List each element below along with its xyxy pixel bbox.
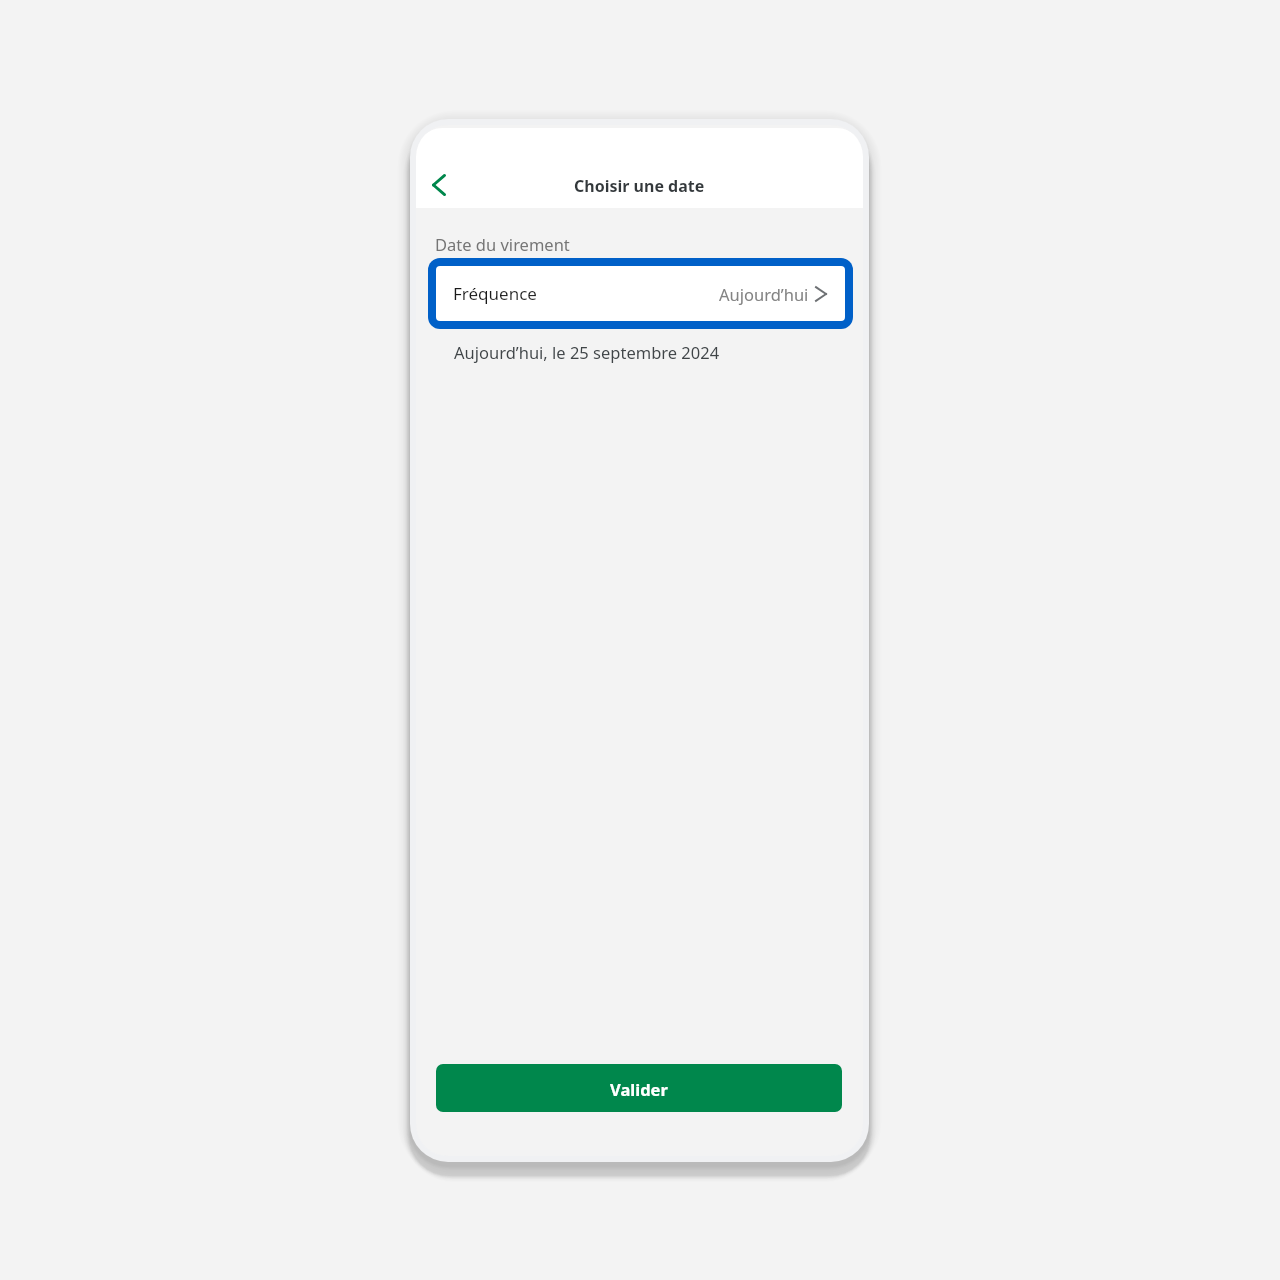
button[interactable]: Back (416, 161, 463, 208)
button[interactable]: Valider (436, 1064, 842, 1112)
staticText: Aujourd’hui (719, 283, 809, 305)
staticText: Choisir une date (574, 175, 705, 197)
staticText: Valider (610, 1078, 668, 1100)
staticText: Date du virement (435, 233, 570, 255)
staticText: Aujourd’hui, le 25 septembre 2024 (454, 341, 720, 363)
button[interactable]: Fréquence (436, 266, 845, 321)
staticText: Fréquence (453, 282, 537, 305)
